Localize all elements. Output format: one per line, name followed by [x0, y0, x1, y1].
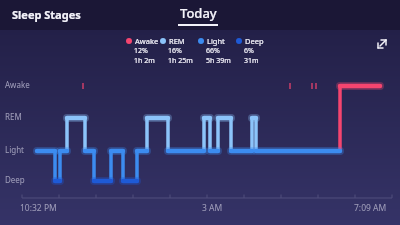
staticText: 12%: [134, 46, 148, 56]
staticText: Sleep Stages: [12, 7, 81, 22]
staticText: Awake: [5, 79, 30, 90]
staticText: REM: [169, 36, 185, 46]
staticText: 3 AM: [202, 202, 223, 214]
staticText: 7:09 AM: [354, 202, 387, 214]
staticText: Deep: [245, 36, 264, 46]
staticText: Light: [207, 36, 225, 46]
button[interactable]: Expand chart: [374, 36, 390, 52]
staticText: REM: [5, 111, 22, 122]
staticText: 66%: [206, 46, 220, 56]
staticText: Today: [180, 4, 217, 22]
staticText: 31m: [244, 56, 259, 66]
button[interactable]: Today: [178, 4, 218, 26]
staticText: 1h 2m: [134, 56, 155, 66]
staticText: Awake: [135, 36, 159, 46]
staticText: 5h 39m: [206, 56, 231, 66]
staticText: Light: [5, 144, 25, 155]
staticText: 6%: [244, 46, 254, 56]
staticText: Deep: [5, 174, 25, 185]
staticText: 10:32 PM: [20, 202, 57, 214]
staticText: 1h 25m: [168, 56, 193, 66]
staticText: 16%: [168, 46, 182, 56]
